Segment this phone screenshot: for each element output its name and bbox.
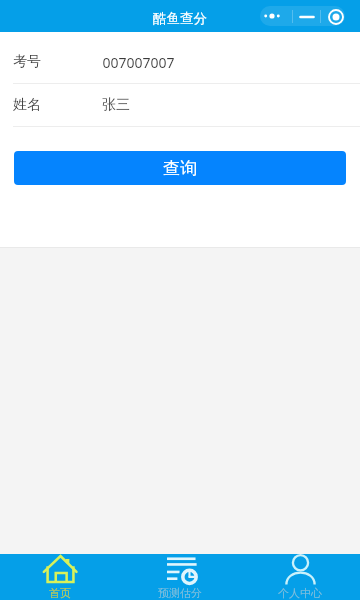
staticText: 查询 [163, 158, 197, 179]
staticText: 预测估分 [158, 586, 202, 600]
button[interactable]: 预测估分 [120, 554, 240, 600]
staticText: 张三 [102, 96, 130, 114]
button[interactable]: Close [321, 6, 345, 26]
button[interactable]: 查询 [14, 151, 346, 185]
staticText: 个人中心 [278, 586, 322, 600]
staticText: 姓名 [13, 96, 41, 114]
button[interactable]: 个人中心 [240, 554, 360, 600]
button[interactable]: 首页 [0, 554, 120, 600]
staticText: 首页 [49, 586, 71, 600]
button[interactable]: 考号 [0, 41, 360, 83]
button[interactable]: 姓名 [0, 84, 360, 126]
button[interactable]: More [260, 6, 292, 26]
staticText: 考号 [13, 53, 41, 71]
staticText: 007007007 [102, 53, 175, 72]
button[interactable]: Minimize [293, 6, 320, 26]
staticText: 酷鱼查分 [153, 10, 207, 27]
